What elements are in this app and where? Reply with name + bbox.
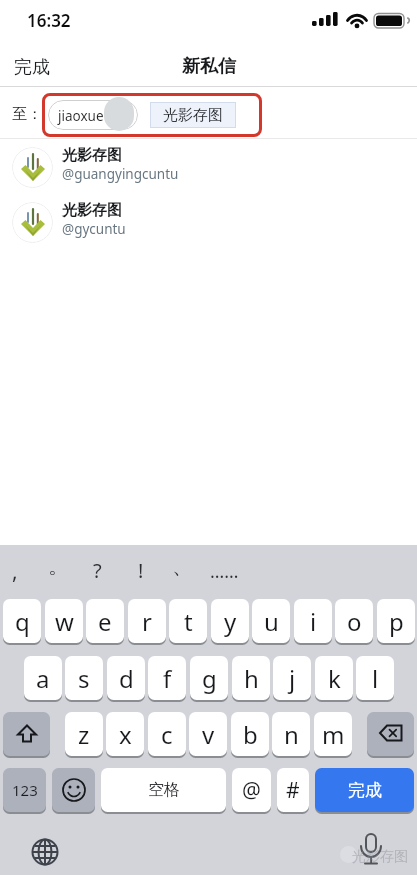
button[interactable]	[367, 712, 414, 756]
staticText: z	[78, 718, 90, 751]
staticText: k	[328, 662, 341, 695]
staticText: 16:32	[27, 9, 71, 32]
staticText: 光影存图	[62, 201, 122, 220]
button[interactable]: e	[86, 599, 124, 643]
button[interactable]: 光影存图	[0, 141, 417, 194]
button[interactable]: t	[169, 599, 207, 643]
button[interactable]: y	[211, 599, 249, 643]
button[interactable]: u	[252, 599, 290, 643]
button[interactable]: x	[106, 712, 144, 756]
button[interactable]: j	[273, 656, 311, 700]
staticText: ……	[210, 559, 239, 584]
button[interactable]: w	[45, 599, 83, 643]
staticText: x	[119, 718, 132, 751]
staticText: 至：	[12, 105, 42, 124]
button[interactable]: a	[24, 656, 62, 700]
button[interactable]: 完成	[0, 0, 36, 23]
staticText: l	[372, 662, 379, 695]
staticText: u	[264, 605, 279, 638]
staticText: jiaoxue	[58, 107, 104, 125]
staticText: j	[289, 662, 296, 695]
button[interactable]	[3, 712, 50, 756]
staticText: t	[184, 605, 193, 638]
staticText: f	[163, 662, 172, 695]
button[interactable]: @	[232, 768, 271, 812]
staticText: 。	[48, 553, 69, 579]
staticText: 新私信	[182, 55, 236, 78]
staticText: b	[243, 718, 258, 751]
staticText: a	[36, 662, 50, 695]
staticText: r	[142, 605, 152, 638]
staticText: @	[242, 776, 261, 805]
staticText: 空格	[148, 780, 180, 800]
staticText: i	[310, 605, 317, 638]
staticText: d	[119, 662, 134, 695]
button[interactable]: h	[232, 656, 270, 700]
button[interactable]: p	[377, 599, 415, 643]
staticText: h	[244, 662, 259, 695]
staticText: e	[98, 605, 112, 638]
staticText: c	[161, 718, 173, 751]
staticText: p	[389, 605, 404, 638]
staticText: 光影存图	[352, 848, 408, 866]
button[interactable]: 光影存图	[0, 196, 417, 249]
staticText: 完成	[348, 780, 382, 801]
staticText: o	[347, 605, 362, 638]
button[interactable]: k	[315, 656, 353, 700]
button[interactable]: b	[231, 712, 269, 756]
staticText: @gycuntu	[62, 220, 126, 238]
staticText: @guangyingcuntu	[62, 165, 179, 183]
button[interactable]: d	[107, 656, 145, 700]
button[interactable]: n	[272, 712, 310, 756]
staticText: 光影存图	[163, 106, 223, 125]
button[interactable]: z	[65, 712, 103, 756]
staticText: ,	[12, 557, 18, 586]
staticText: !	[138, 557, 144, 584]
button[interactable]	[31, 838, 59, 866]
staticText: q	[15, 605, 30, 638]
button[interactable]: l	[356, 656, 394, 700]
staticText: m	[322, 718, 345, 751]
button[interactable]: 123	[3, 768, 46, 812]
staticText: v	[202, 718, 215, 751]
button[interactable]: c	[148, 712, 186, 756]
button[interactable]: f	[148, 656, 186, 700]
button[interactable]: g	[190, 656, 228, 700]
button[interactable]: v	[189, 712, 227, 756]
staticText: 光影存图	[62, 146, 122, 165]
button[interactable]: s	[65, 656, 103, 700]
staticText: w	[55, 605, 74, 638]
staticText: 123	[12, 780, 38, 800]
staticText: ?	[93, 557, 102, 584]
button[interactable]	[52, 768, 95, 812]
button[interactable]: i	[294, 599, 332, 643]
button[interactable]	[358, 832, 384, 872]
button[interactable]: 完成	[315, 768, 414, 812]
button[interactable]: q	[3, 599, 41, 643]
button[interactable]: 空格	[101, 768, 226, 812]
button[interactable]: jiaoxue	[48, 100, 138, 130]
staticText: y	[224, 605, 237, 638]
staticText: n	[284, 718, 299, 751]
button[interactable]: m	[314, 712, 352, 756]
staticText: #	[286, 776, 300, 805]
staticText: 、	[172, 553, 193, 579]
staticText: g	[202, 662, 217, 695]
staticText: s	[78, 662, 90, 695]
button[interactable]: r	[128, 599, 166, 643]
button[interactable]: #	[277, 768, 309, 812]
button[interactable]: o	[335, 599, 373, 643]
